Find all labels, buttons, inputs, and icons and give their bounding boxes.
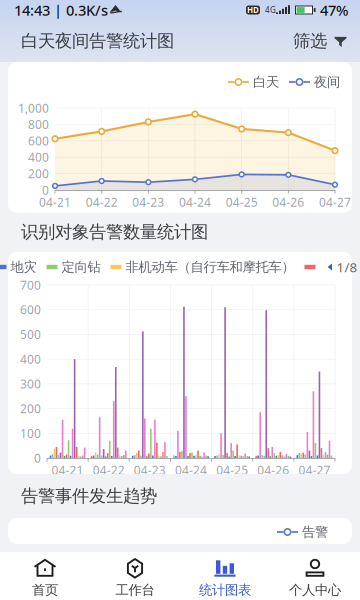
staticText: 0: [34, 450, 41, 466]
staticText: 个人中心: [289, 582, 341, 598]
button[interactable]: 工作台: [90, 552, 180, 600]
staticText: 04-26: [257, 462, 289, 478]
staticText: 04-24: [175, 462, 207, 478]
staticText: 400: [28, 149, 49, 165]
staticText: HD: [247, 5, 259, 15]
staticText: 100: [20, 425, 41, 441]
button[interactable]: 个人中心: [270, 552, 360, 600]
staticText: 700: [20, 277, 41, 293]
staticText: 600: [28, 133, 49, 149]
staticText: 04-22: [93, 462, 125, 478]
staticText: 04-24: [179, 194, 211, 210]
staticText: 04-22: [86, 194, 118, 210]
staticText: 200: [28, 166, 49, 181]
staticText: 4G: [265, 5, 276, 15]
staticText: 14:43 | 0.3K/s: [14, 0, 108, 20]
staticText: 47%: [320, 0, 348, 20]
staticText: 04-21: [39, 194, 71, 210]
staticText: 识别对象告警数量统计图: [21, 221, 208, 243]
staticText: 04-27: [319, 194, 351, 210]
staticText: 地灾: [10, 259, 36, 275]
staticText: 白天: [253, 74, 279, 90]
staticText: 非机动车（自行车和摩托车）: [125, 259, 294, 275]
staticText: 定向钻: [61, 259, 100, 275]
staticText: 04-25: [226, 194, 258, 210]
staticText: 筛选: [293, 30, 327, 52]
staticText: 500: [20, 326, 41, 342]
staticText: 04-21: [52, 462, 84, 478]
staticText: 300: [20, 376, 41, 392]
button[interactable]: 上一页: [323, 260, 336, 274]
staticText: 800: [28, 116, 49, 132]
button[interactable]: 统计图表: [180, 552, 270, 600]
staticText: 600: [20, 302, 41, 318]
staticText: 白天夜间告警统计图: [21, 30, 174, 52]
staticText: 统计图表: [199, 582, 251, 598]
staticText: 0: [42, 182, 49, 198]
staticText: 400: [20, 351, 41, 367]
button[interactable]: 筛选: [293, 29, 347, 53]
staticText: 告警事件发生趋势: [21, 485, 157, 507]
staticText: 1/8: [336, 258, 357, 276]
staticText: 夜间: [314, 74, 340, 90]
staticText: 04-23: [132, 194, 164, 210]
staticText: 200: [20, 401, 41, 416]
staticText: 04-26: [272, 194, 304, 210]
staticText: 首页: [32, 582, 58, 598]
staticText: 告警: [302, 524, 328, 540]
staticText: 工作台: [115, 582, 154, 598]
button[interactable]: 首页: [0, 552, 90, 600]
staticText: 04-23: [134, 462, 166, 478]
staticText: 1,000: [18, 100, 49, 116]
staticText: 04-27: [298, 462, 330, 478]
staticText: 04-25: [216, 462, 248, 478]
